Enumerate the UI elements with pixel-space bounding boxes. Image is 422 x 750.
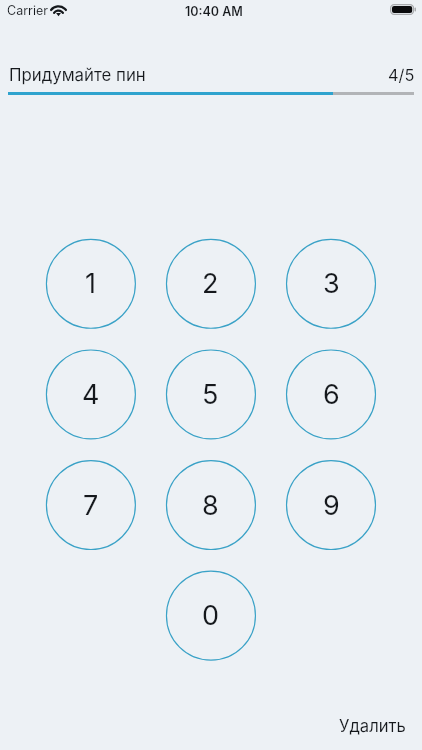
staticText: Придумайте пин bbox=[9, 65, 146, 85]
button[interactable]: Удалить bbox=[330, 709, 415, 743]
staticText: 4 bbox=[82, 378, 100, 411]
other: Battery full bbox=[390, 4, 416, 15]
staticText: 6 bbox=[323, 378, 340, 411]
staticText: 3 bbox=[323, 267, 340, 300]
staticText: 5 bbox=[202, 378, 219, 411]
button[interactable]: 2 bbox=[166, 239, 255, 328]
staticText: 0 bbox=[202, 599, 220, 632]
button[interactable]: 9 bbox=[287, 461, 376, 550]
staticText: 1 bbox=[85, 267, 96, 300]
staticText: 7 bbox=[83, 489, 99, 522]
staticText: Carrier bbox=[7, 3, 48, 18]
staticText: 2 bbox=[202, 267, 219, 300]
button[interactable]: 1 bbox=[46, 239, 135, 328]
button[interactable]: 0 bbox=[166, 571, 255, 660]
staticText: 9 bbox=[323, 489, 340, 522]
button[interactable]: 8 bbox=[166, 461, 255, 550]
other: Wi-Fi signal bbox=[51, 4, 66, 16]
button[interactable]: 6 bbox=[287, 350, 376, 439]
staticText: 4/5 bbox=[388, 65, 415, 85]
staticText: 8 bbox=[202, 489, 219, 522]
button[interactable]: 3 bbox=[287, 239, 376, 328]
button[interactable]: 7 bbox=[46, 461, 135, 550]
button[interactable]: 5 bbox=[166, 350, 255, 439]
staticText: 10:40 AM bbox=[185, 4, 243, 19]
button[interactable]: 4 bbox=[46, 350, 135, 439]
staticText: Удалить bbox=[339, 716, 406, 736]
